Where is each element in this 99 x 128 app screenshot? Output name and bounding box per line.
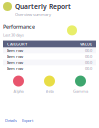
staticText: Export [22, 118, 33, 123]
staticText: 00.0 [85, 48, 92, 53]
staticText: CATEGORY [7, 41, 27, 47]
staticText: Performance [3, 23, 35, 30]
staticText: 00.0 [85, 54, 92, 59]
staticText: Beta [45, 89, 53, 94]
staticText: Item row [7, 66, 23, 71]
staticText: 00.0 [85, 66, 92, 71]
staticText: Details [5, 118, 17, 123]
staticText: Quarterly Report [15, 2, 71, 11]
staticText: Item row [7, 48, 23, 53]
staticText: Item row [7, 54, 23, 59]
staticText: Item row [7, 60, 23, 65]
staticText: Alpha [13, 89, 23, 94]
staticText: Last 30 days [3, 32, 24, 37]
staticText: VALUE [80, 41, 92, 47]
staticText: 00.0 [85, 60, 92, 65]
staticText: Gamma [73, 89, 88, 94]
staticText: Overview summary [15, 12, 51, 17]
